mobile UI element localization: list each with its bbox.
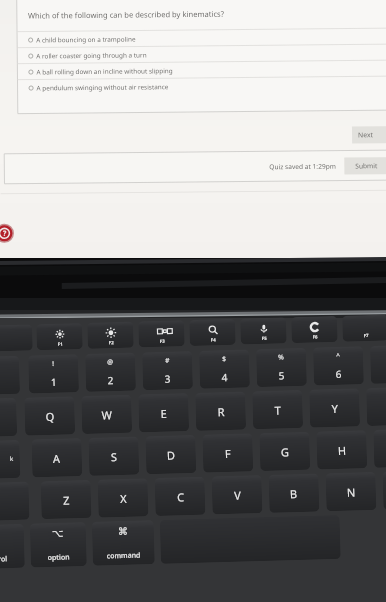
staticText: F4 [211, 336, 216, 342]
button[interactable]: Q [24, 396, 75, 436]
staticText: $ [222, 354, 226, 363]
staticText: F3 [160, 338, 165, 344]
button[interactable]: M [382, 470, 386, 510]
button[interactable]: S [88, 436, 139, 476]
button[interactable]: F [202, 433, 253, 473]
button[interactable]: Escape [0, 324, 33, 352]
staticText: Q [45, 409, 55, 424]
staticText: Which of the following can be described … [28, 9, 225, 21]
staticText: Submit [355, 161, 377, 170]
staticText: 3 [164, 372, 171, 386]
staticText: 6 [335, 367, 342, 381]
button[interactable]: Brightness up [87, 322, 134, 349]
staticText: Y [331, 401, 339, 416]
staticText: F6 [312, 333, 318, 340]
button[interactable]: U [366, 387, 386, 426]
staticText: T [274, 402, 282, 418]
button[interactable]: W [81, 395, 132, 434]
button[interactable]: Control [0, 524, 25, 569]
button[interactable]: # [142, 351, 193, 390]
staticText: 1 [51, 375, 57, 389]
button[interactable]: Command [92, 520, 155, 566]
staticText: A ball rolling down an incline without s… [36, 66, 173, 76]
staticText: A child bouncing on a trampoline [36, 34, 136, 44]
button[interactable]: Mission Control [138, 320, 185, 347]
button[interactable]: A ball rolling down an incline without s… [17, 60, 386, 80]
staticText: F [225, 446, 231, 461]
staticText: k [10, 455, 14, 463]
staticText: F1 [58, 341, 63, 347]
staticText: 2 [107, 373, 114, 387]
button[interactable]: J [373, 429, 386, 468]
button[interactable]: A [31, 438, 82, 477]
button[interactable]: Key [0, 398, 17, 437]
button[interactable]: C [154, 477, 205, 516]
button[interactable]: F7 [342, 314, 386, 342]
staticText: X [120, 491, 127, 506]
button[interactable]: Help [0, 224, 14, 243]
staticText: % [278, 352, 284, 362]
button[interactable]: Spotlight [189, 319, 236, 346]
staticText: 5 [278, 368, 285, 383]
staticText: ⌥ [52, 528, 64, 540]
staticText: A roller coaster going through a turn [36, 50, 147, 60]
staticText: F2 [109, 339, 114, 345]
staticText: G [281, 444, 290, 459]
button[interactable]: B [268, 473, 319, 513]
staticText: ? [3, 229, 7, 239]
button[interactable]: ! [28, 354, 79, 394]
staticText: ontrol [0, 554, 8, 565]
button[interactable]: Option [30, 522, 87, 567]
button[interactable]: Z [40, 480, 91, 519]
button[interactable]: X [97, 478, 148, 518]
button[interactable]: A pendulum swinging without air resistan… [17, 76, 386, 96]
staticText: @ [107, 357, 113, 366]
button[interactable]: T [252, 390, 303, 429]
staticText: Quiz saved at 1:29pm [269, 162, 336, 171]
button[interactable]: E [138, 393, 189, 432]
button[interactable]: R [195, 391, 246, 431]
staticText: ^ [336, 351, 340, 360]
button[interactable]: Y [309, 388, 360, 428]
button[interactable]: A roller coaster going through a turn [17, 44, 386, 64]
button[interactable]: N [325, 472, 376, 511]
button[interactable]: $ [199, 349, 250, 389]
button[interactable]: ^ [313, 346, 364, 386]
staticText: option [47, 552, 70, 563]
button[interactable]: % [256, 348, 307, 387]
button[interactable]: ~ [0, 356, 20, 395]
button[interactable]: V [211, 475, 262, 514]
button[interactable]: A child bouncing on a trampoline [17, 28, 386, 48]
staticText: A [53, 451, 61, 466]
staticText: C [177, 489, 184, 504]
staticText: F7 [363, 332, 369, 338]
button[interactable]: Key [0, 482, 30, 522]
button[interactable]: D [145, 435, 196, 474]
button[interactable]: Space [160, 515, 341, 564]
button[interactable]: & [370, 345, 386, 384]
button[interactable]: Next [352, 126, 386, 143]
staticText: ⌘ [118, 526, 128, 538]
button[interactable]: k [0, 440, 20, 480]
button[interactable]: Dictation [240, 317, 287, 345]
button[interactable]: H [316, 430, 367, 470]
staticText: 4 [221, 370, 228, 384]
staticText: A pendulum swinging without air resistan… [36, 82, 169, 92]
staticText: R [217, 404, 225, 419]
staticText: W [101, 407, 113, 422]
button[interactable]: Submit [344, 157, 386, 174]
staticText: B [290, 486, 298, 501]
staticText: # [165, 356, 170, 365]
button[interactable]: Brightness down [36, 323, 83, 350]
staticText: H [338, 443, 347, 458]
staticText: N [347, 484, 356, 500]
staticText: F5 [261, 335, 267, 341]
staticText: Z [63, 492, 70, 508]
staticText: D [167, 447, 176, 463]
button[interactable]: Do Not Disturb [291, 316, 338, 343]
staticText: V [234, 488, 241, 503]
button[interactable]: @ [85, 353, 136, 392]
staticText: Next [358, 130, 373, 139]
staticText: command [106, 550, 141, 561]
button[interactable]: G [259, 432, 310, 471]
